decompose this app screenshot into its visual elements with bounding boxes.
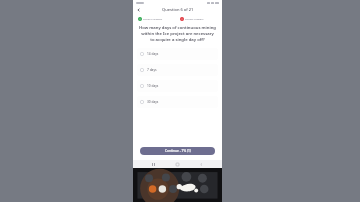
staticText: Continue - 7% (1) — [165, 149, 191, 153]
staticText: 14 days — [147, 52, 159, 56]
button[interactable]: Back — [198, 161, 205, 168]
button[interactable]: Home — [174, 161, 181, 168]
button[interactable]: 14 days — [137, 48, 218, 60]
button[interactable]: 30 days — [137, 96, 218, 108]
staticText: 10 days — [147, 84, 159, 88]
button[interactable]: Wrong Answers — [179, 15, 218, 22]
staticText: 30 days — [147, 100, 159, 104]
staticText: 7 days — [147, 68, 157, 72]
staticText: Correct Answers — [143, 17, 163, 20]
staticText: How many days of continuous mining withi… — [139, 25, 216, 43]
staticText: Wrong Answers — [185, 17, 204, 20]
staticText: Question 6 of 21 — [162, 7, 194, 12]
button[interactable]: Back — [135, 6, 142, 13]
button[interactable]: Recent apps — [150, 161, 157, 168]
button[interactable]: Correct Answers — [137, 15, 175, 22]
button[interactable]: 10 days — [137, 80, 218, 92]
button[interactable]: 7 days — [137, 64, 218, 76]
button[interactable]: Continue - 7% (1) — [140, 147, 215, 155]
